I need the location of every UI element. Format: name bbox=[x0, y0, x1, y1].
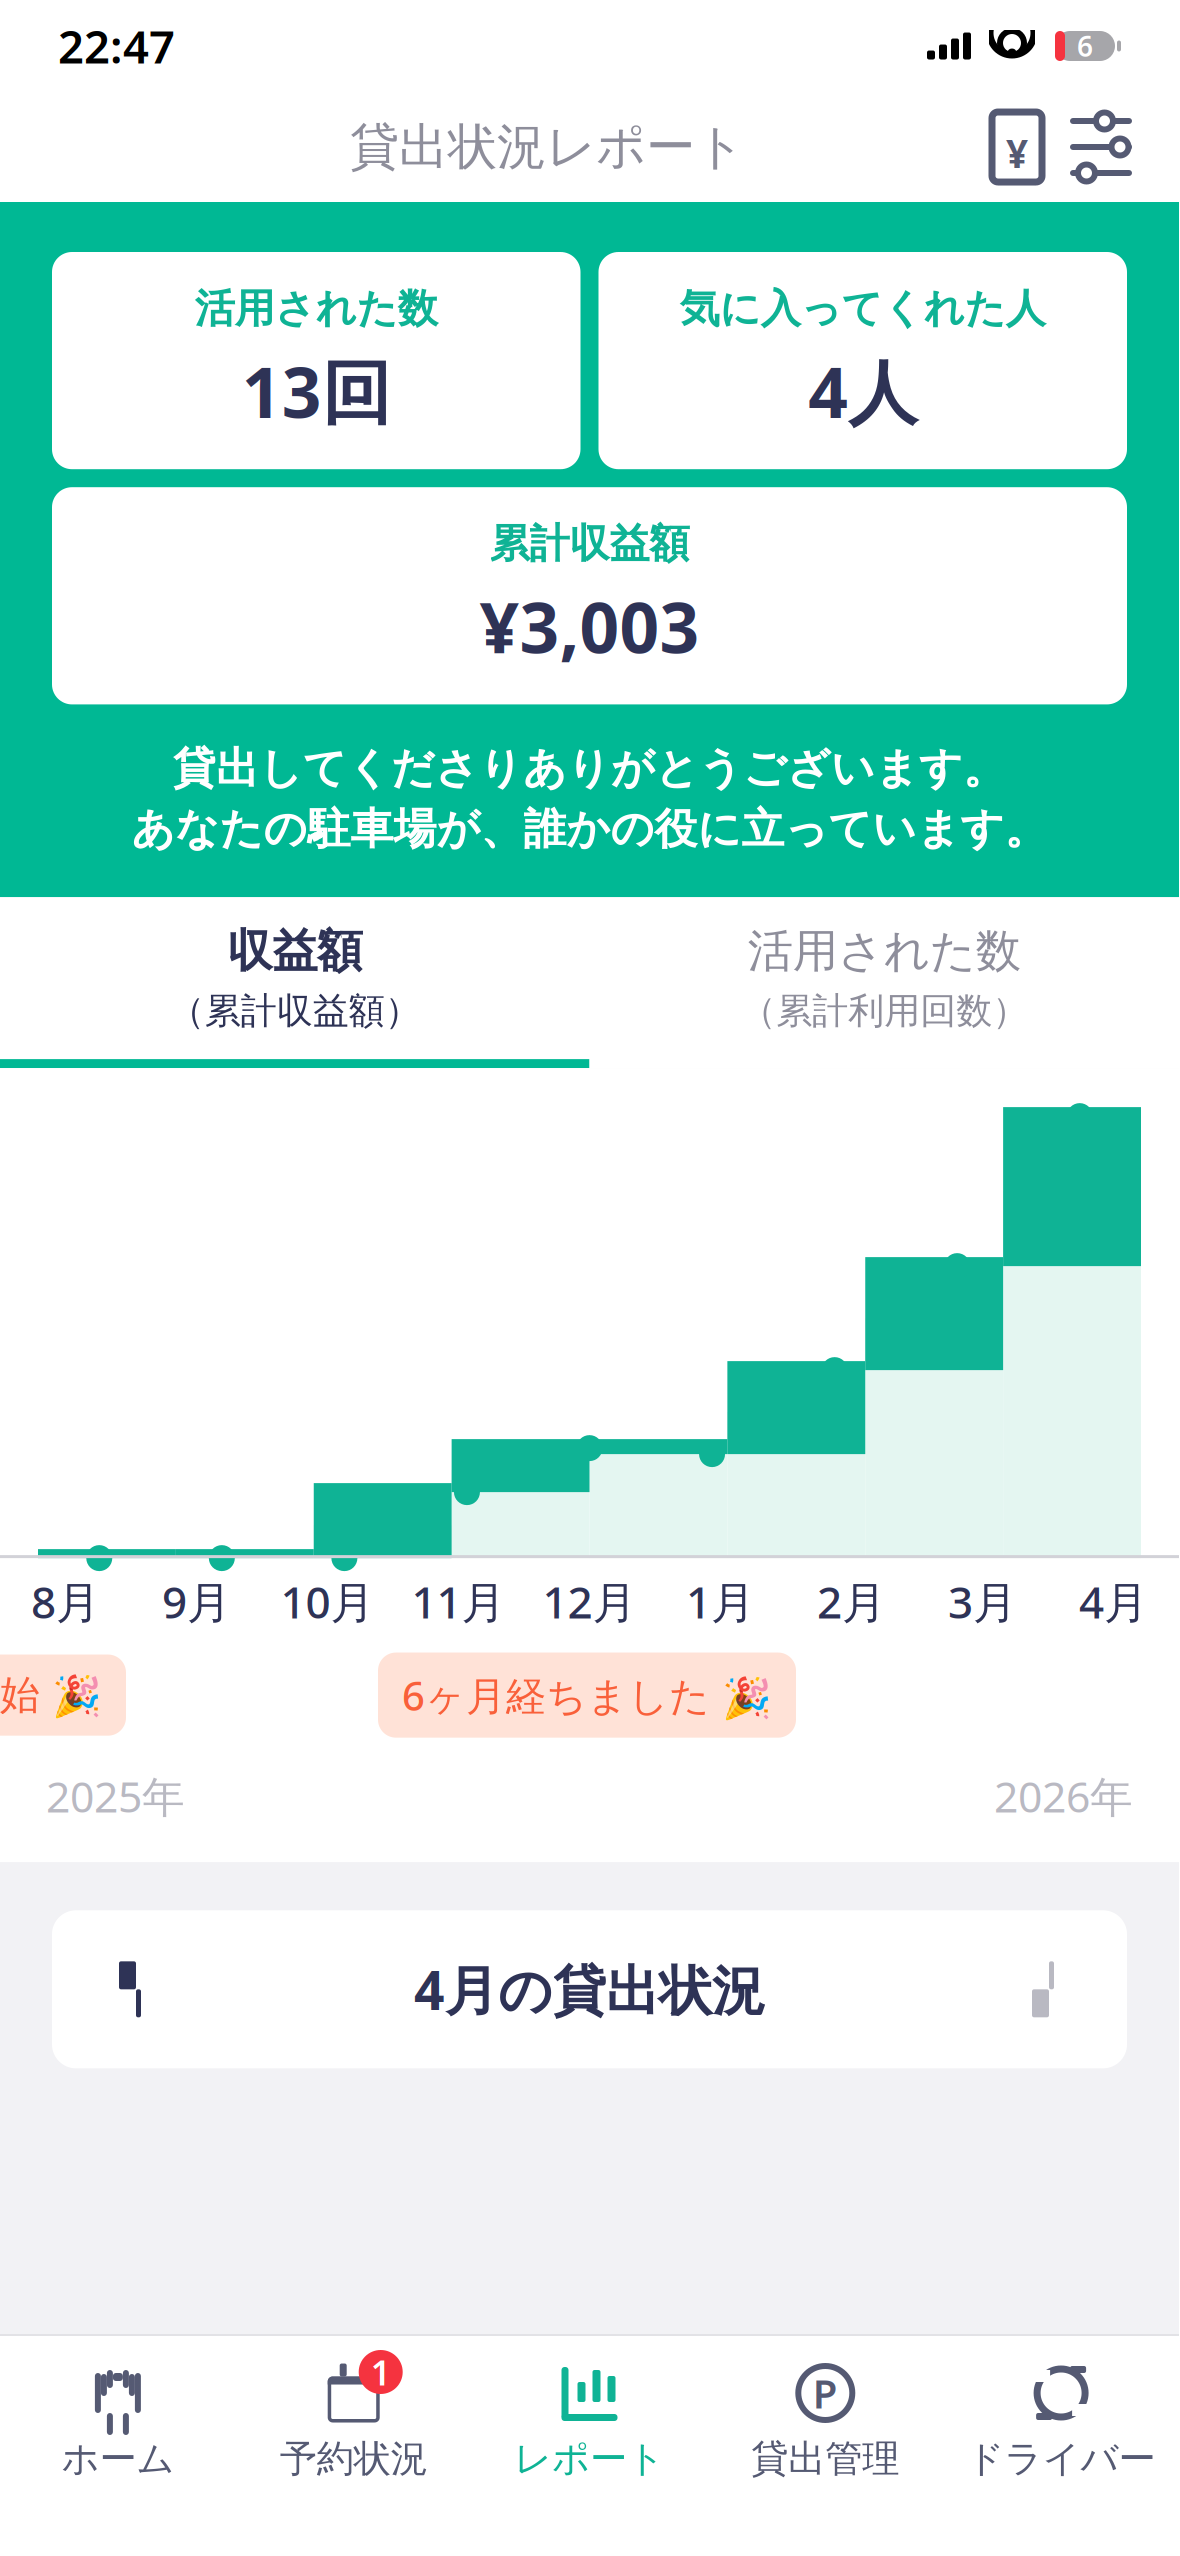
staticText: 6ヶ月経ちました 🎉 bbox=[402, 1668, 772, 1722]
staticText: 予約状況 bbox=[280, 2436, 428, 2482]
staticText: 貸出状況レポート bbox=[350, 117, 745, 177]
staticText: 10月 bbox=[280, 1572, 374, 1630]
staticText: 累計収益額 bbox=[489, 519, 689, 568]
staticText: 収益額 bbox=[227, 923, 362, 979]
button[interactable]: 次の月 bbox=[1001, 1944, 1091, 2034]
staticText: 開始 🎉 bbox=[0, 1670, 102, 1720]
staticText: 貸出管理 bbox=[751, 2436, 899, 2482]
staticText: あなたの駐車場が、誰かの役に立っています。 bbox=[131, 803, 1047, 855]
staticText: 貸出してくださりありがとうございます。 bbox=[173, 742, 1006, 795]
button[interactable]: フィルター bbox=[1059, 105, 1143, 189]
staticText: 2月 bbox=[817, 1572, 886, 1630]
staticText: 6 bbox=[1077, 27, 1093, 65]
button[interactable]: ドライバー bbox=[943, 2356, 1179, 2488]
staticText: 22:47 bbox=[58, 16, 175, 76]
staticText: 8月 bbox=[31, 1572, 100, 1630]
staticText: 1 bbox=[371, 2349, 391, 2395]
staticText: 9月 bbox=[162, 1572, 231, 1630]
button[interactable]: レポート bbox=[472, 2356, 707, 2488]
staticText: 11月 bbox=[411, 1572, 505, 1630]
staticText: 活用された数 bbox=[195, 284, 438, 333]
staticText: ドライバー bbox=[967, 2436, 1156, 2482]
button[interactable]: P bbox=[707, 2356, 943, 2488]
staticText: P bbox=[813, 2366, 838, 2419]
staticText: （累計収益額） bbox=[169, 989, 421, 1033]
staticText: 気に入ってくれた人 bbox=[680, 284, 1046, 333]
staticText: （累計利用回数） bbox=[740, 989, 1028, 1033]
staticText: 活用された数 bbox=[748, 923, 1021, 979]
staticText: 4人 bbox=[808, 345, 917, 437]
staticText: 3月 bbox=[948, 1572, 1017, 1630]
staticText: レポート bbox=[514, 2436, 665, 2482]
staticText: 4月 bbox=[1079, 1572, 1148, 1630]
staticText: 12月 bbox=[542, 1572, 636, 1630]
staticText: 4月の貸出状況 bbox=[414, 1954, 765, 2025]
button[interactable]: 収益明細 bbox=[975, 105, 1059, 189]
button[interactable]: 1 bbox=[236, 2356, 472, 2488]
button[interactable]: ホーム bbox=[0, 2356, 236, 2488]
staticText: 13回 bbox=[242, 345, 391, 437]
button[interactable]: 前の月 bbox=[88, 1944, 178, 2034]
button[interactable]: 収益額 bbox=[0, 897, 589, 1059]
staticText: ¥ bbox=[1006, 127, 1028, 179]
staticText: 1月 bbox=[686, 1572, 755, 1630]
staticText: 2025年 bbox=[46, 1768, 185, 1824]
staticText: ¥3,003 bbox=[479, 580, 699, 672]
staticText: ホーム bbox=[61, 2436, 174, 2482]
staticText: 2026年 bbox=[994, 1768, 1133, 1824]
button[interactable]: 活用された数 bbox=[589, 897, 1179, 1059]
